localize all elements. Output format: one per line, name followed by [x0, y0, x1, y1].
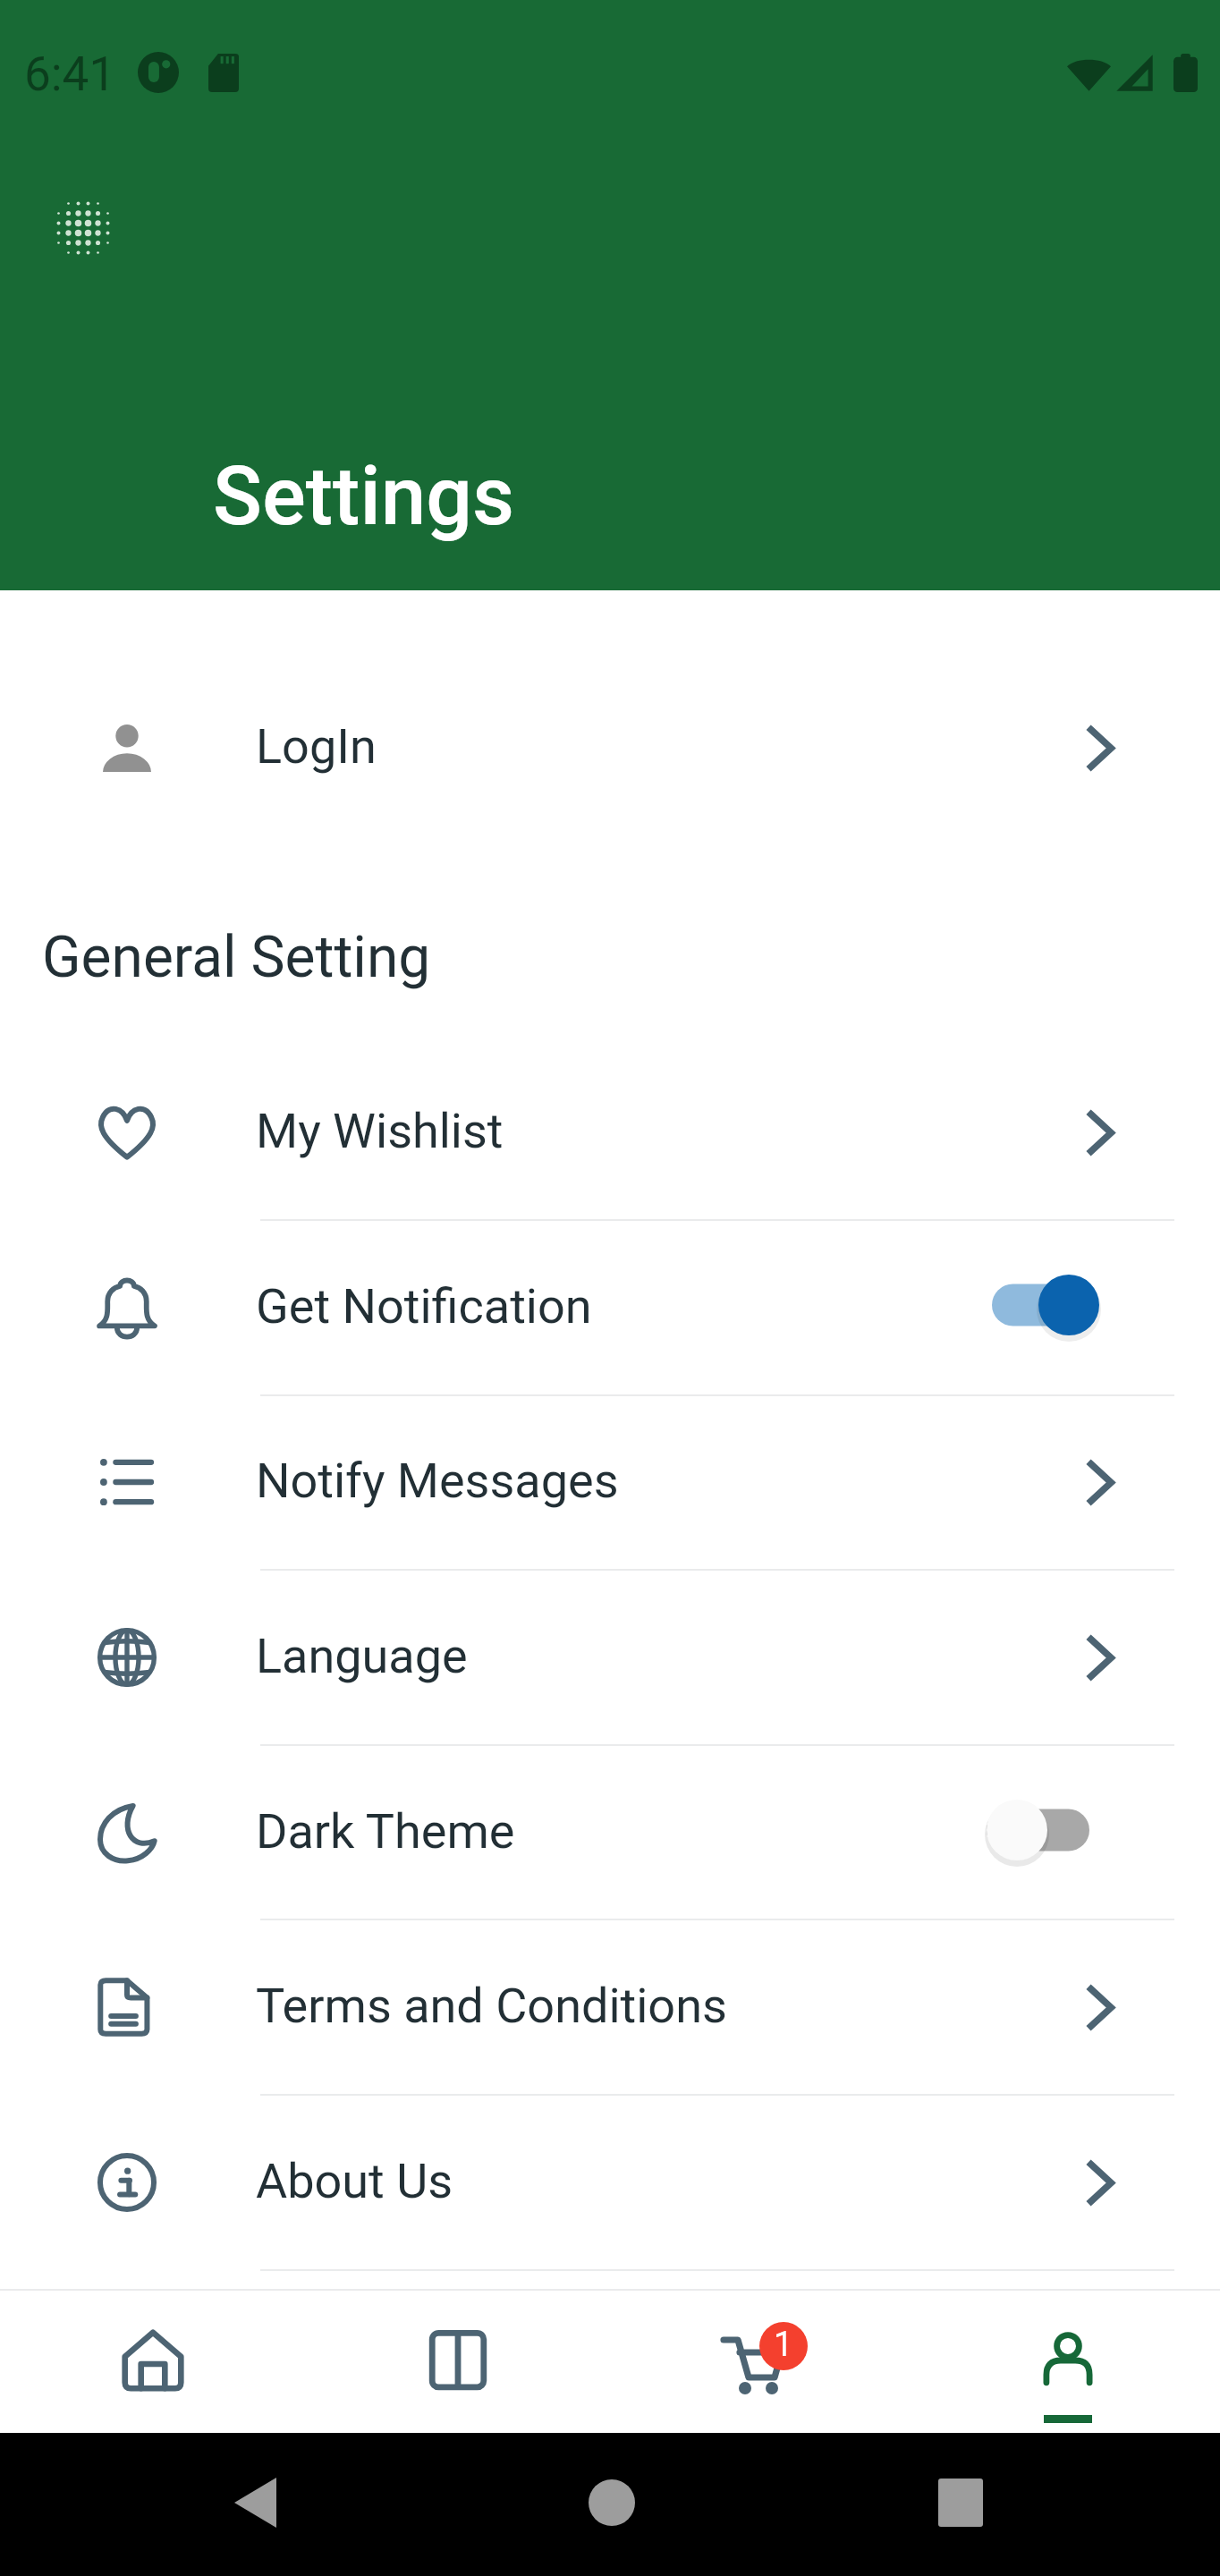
button[interactable]: Cart [611, 2289, 915, 2433]
button[interactable]: Notify Messages [0, 1394, 1220, 1570]
button[interactable]: Dark Theme [0, 1745, 1220, 1920]
staticText: About Us [256, 2153, 453, 2209]
staticText: LogIn [256, 718, 377, 775]
button[interactable]: Language [0, 1570, 1220, 1745]
button[interactable]: App logo [54, 199, 113, 258]
button[interactable]: My Wishlist [0, 1045, 1220, 1220]
staticText: My Wishlist [256, 1103, 504, 1159]
button[interactable]: Profile [916, 2289, 1220, 2433]
staticText: Get Notification [256, 1278, 592, 1335]
button[interactable]: LogIn [0, 660, 1220, 835]
staticText: Settings [213, 449, 514, 545]
staticText: 1 [774, 2325, 793, 2365]
staticText: 6:41 [24, 47, 116, 102]
button[interactable]: Catalog [306, 2289, 610, 2433]
button[interactable]: Home [1, 2289, 305, 2433]
button[interactable]: Get Notification [0, 1220, 1220, 1395]
button[interactable]: About Us [0, 2095, 1220, 2270]
button[interactable]: Terms and Conditions [0, 1919, 1220, 2095]
staticText: General Setting [42, 924, 431, 991]
button[interactable]: Get notification, on [992, 1262, 1126, 1348]
staticText: Terms and Conditions [256, 1978, 727, 2034]
staticText: Notify Messages [256, 1453, 619, 1509]
button[interactable]: Dark theme, off [987, 1787, 1121, 1873]
staticText: Language [256, 1628, 468, 1684]
staticText: Dark Theme [256, 1803, 515, 1860]
